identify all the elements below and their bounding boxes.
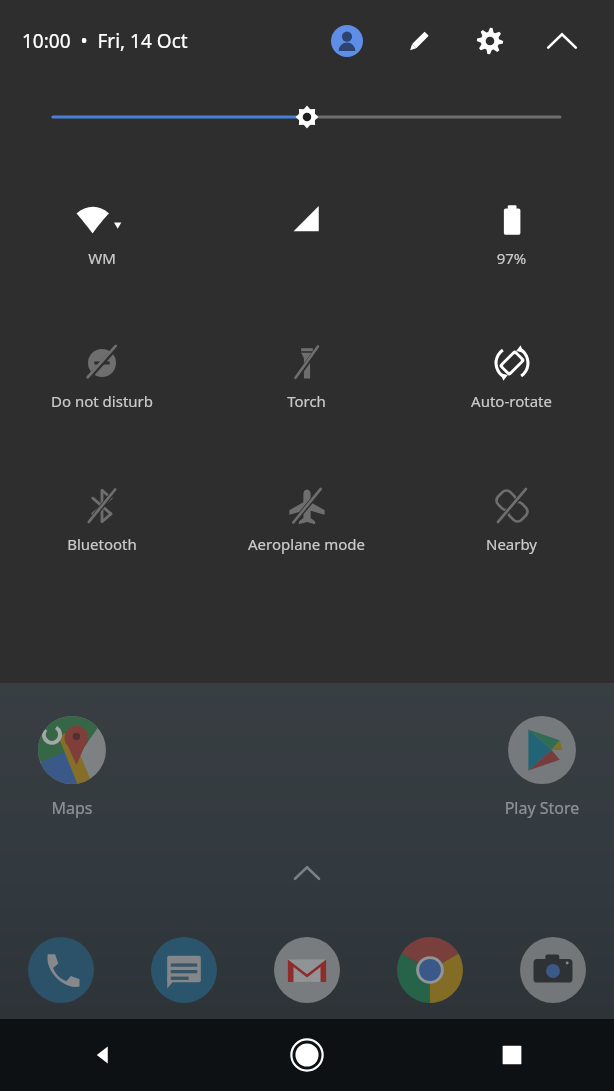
staticText: Auto-rotate [409,391,614,411]
button[interactable]: Do not disturb [0,335,204,431]
button[interactable]: WM [0,192,204,288]
button[interactable]: Mobile data [204,192,409,288]
button[interactable]: App [268,931,346,1009]
button[interactable]: Collapse [540,19,584,63]
staticText: 10:00 • Fri, 14 Oct [22,28,188,54]
button[interactable]: App [22,931,100,1009]
staticText: 97% [409,248,614,268]
button[interactable]: Recent apps [409,1019,614,1091]
button[interactable]: App [391,931,469,1009]
button[interactable]: Maps [26,700,118,819]
button[interactable]: Back [0,1019,204,1091]
staticText: Bluetooth [0,534,204,554]
staticText: Do not disturb [0,391,204,411]
button[interactable]: Settings [468,19,512,63]
button[interactable]: Bluetooth [0,478,204,574]
button[interactable]: Brightness [0,82,614,152]
staticText: Aeroplane mode [204,534,409,554]
button[interactable]: Edit tiles [396,19,440,63]
staticText: Nearby [409,534,614,554]
button[interactable]: App [514,931,592,1009]
button[interactable]: Torch [204,335,409,431]
button[interactable]: Aeroplane mode [204,478,409,574]
staticText: Torch [204,391,409,411]
button[interactable]: Home [204,1019,409,1091]
button[interactable]: App [145,931,223,1009]
button[interactable]: Auto-rotate [409,335,614,431]
staticText: Play Store [496,797,588,819]
staticText: Maps [26,797,118,819]
button[interactable]: Play Store [496,700,588,819]
staticText: WM [0,248,204,268]
button[interactable]: Nearby [409,478,614,574]
button[interactable]: 97% [409,192,614,288]
button[interactable]: User account [325,19,369,63]
